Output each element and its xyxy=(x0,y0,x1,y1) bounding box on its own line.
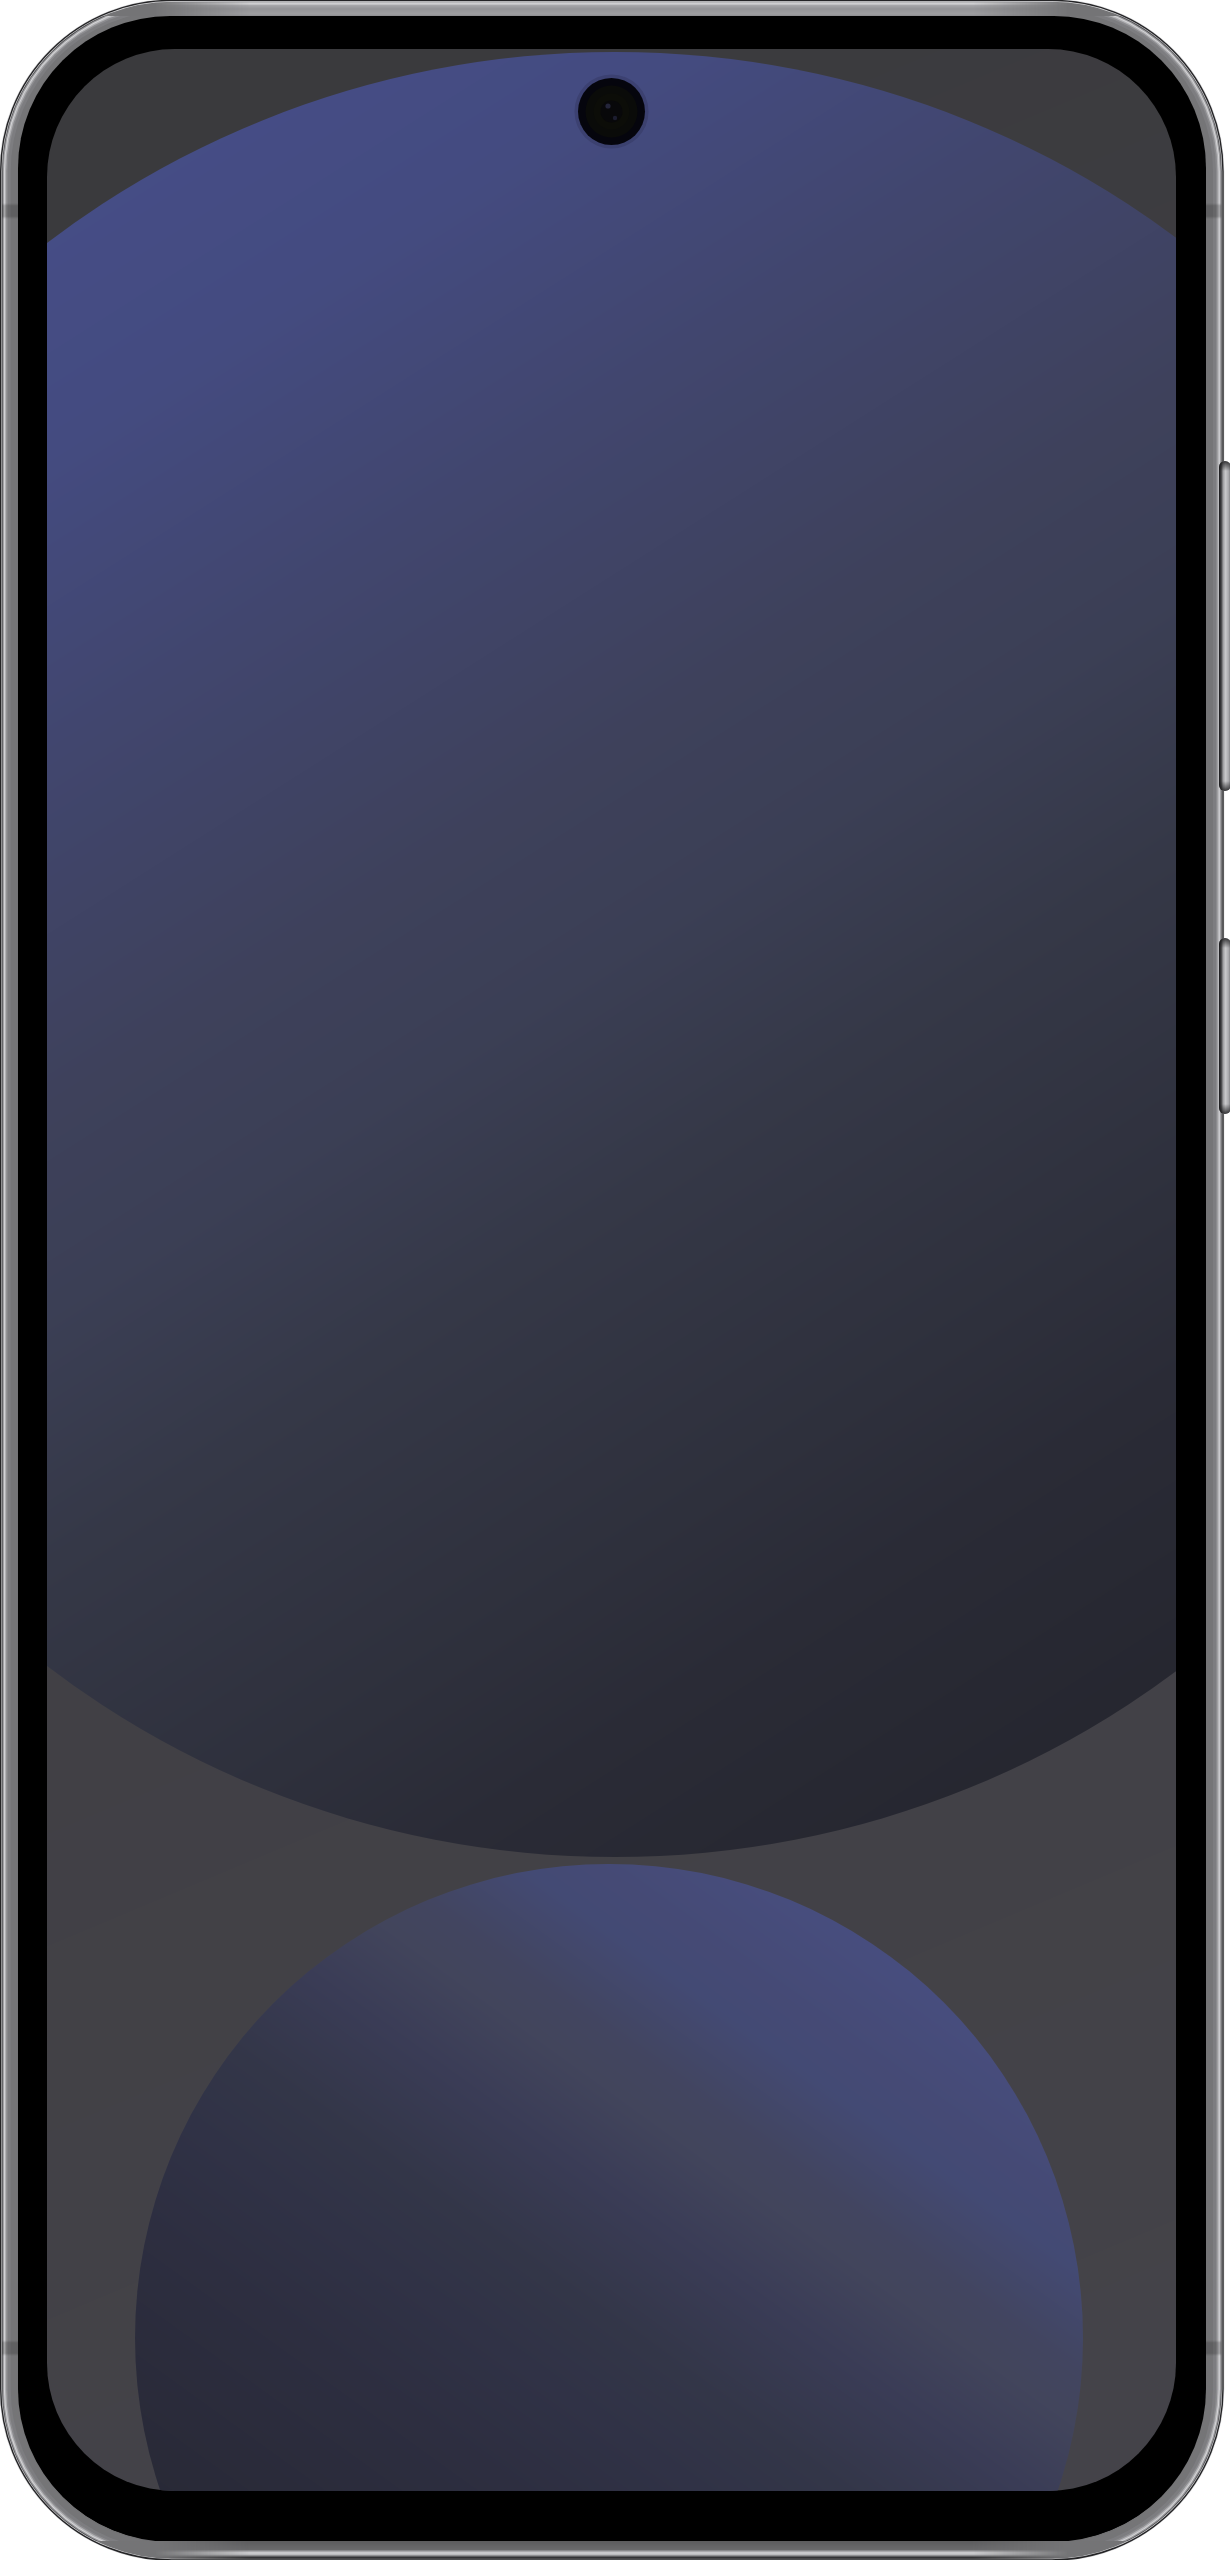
button[interactable]: Front camera xyxy=(578,78,645,145)
button[interactable]: Phone display xyxy=(47,49,1176,2491)
button[interactable]: Side key xyxy=(1205,938,1230,1114)
button[interactable]: Volume buttons xyxy=(1205,461,1230,791)
